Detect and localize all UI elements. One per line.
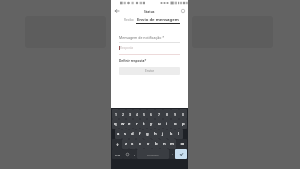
button[interactable]: 3	[126, 109, 133, 119]
button[interactable]: 0	[179, 109, 187, 119]
button[interactable]: f	[136, 129, 143, 139]
button[interactable]: Enviar	[119, 67, 180, 75]
staticText: 5	[143, 112, 145, 117]
button[interactable]: s	[122, 129, 129, 139]
button[interactable]: ,	[131, 149, 137, 159]
staticText: g	[146, 131, 149, 137]
button[interactable]: 5	[140, 109, 147, 119]
staticText: Envio de mensagem	[137, 17, 179, 23]
button[interactable]: k	[167, 129, 175, 139]
button[interactable]: Envio de mensagem	[136, 15, 180, 24]
button[interactable]: 2	[119, 109, 126, 119]
staticText: n	[163, 141, 166, 147]
button[interactable]: o	[171, 119, 179, 129]
button[interactable]: x	[129, 139, 136, 149]
staticText: o	[174, 121, 177, 127]
staticText: Mensagem de notificação *	[119, 35, 165, 40]
staticText: 3	[129, 112, 131, 117]
staticText: ,	[134, 152, 135, 156]
button[interactable]: n	[160, 139, 168, 149]
button[interactable]: y	[147, 119, 155, 129]
staticText: p	[182, 121, 185, 127]
staticText: u	[158, 121, 161, 127]
button[interactable]: j	[159, 129, 167, 139]
staticText: 4	[136, 112, 138, 117]
button[interactable]: a	[115, 129, 122, 139]
button[interactable]: Recibo	[121, 15, 136, 24]
staticText: 6	[150, 112, 152, 117]
staticText: e	[128, 121, 131, 127]
button[interactable]: b	[152, 139, 160, 149]
button[interactable]: Shift	[112, 139, 122, 149]
button[interactable]: i	[163, 119, 171, 129]
staticText: 8	[166, 112, 168, 117]
staticText: m	[170, 141, 174, 147]
staticText: 9	[174, 112, 176, 117]
staticText: a	[117, 131, 120, 137]
staticText: q	[114, 121, 117, 127]
staticText: t	[143, 121, 145, 127]
staticText: Definir resposta*	[119, 59, 147, 63]
staticText: v	[147, 141, 150, 147]
button[interactable]: h	[151, 129, 159, 139]
button[interactable]: r	[133, 119, 140, 129]
button[interactable]: e	[126, 119, 133, 129]
button[interactable]: q	[112, 119, 119, 129]
button[interactable]: z	[122, 139, 129, 149]
staticText: ?123	[115, 153, 121, 156]
staticText: r	[136, 121, 138, 127]
staticText: 0	[182, 112, 184, 117]
button[interactable]: Back	[112, 6, 121, 15]
staticText: l	[178, 131, 180, 137]
button[interactable]: Enter	[175, 149, 187, 159]
staticText: 2	[122, 112, 124, 117]
button[interactable]: t	[140, 119, 147, 129]
button[interactable]: v	[144, 139, 152, 149]
staticText: d	[131, 131, 134, 137]
staticText: Enviar	[145, 69, 155, 73]
button[interactable]: g	[143, 129, 151, 139]
button[interactable]: 9	[171, 109, 179, 119]
staticText: português	[147, 153, 159, 156]
button[interactable]: 8	[163, 109, 171, 119]
staticText: 1	[115, 112, 117, 117]
staticText: y	[150, 121, 153, 127]
staticText: j	[162, 131, 164, 137]
button[interactable]: d	[129, 129, 136, 139]
button[interactable]: c	[136, 139, 144, 149]
staticText: z	[125, 141, 127, 147]
button[interactable]: .	[169, 149, 175, 159]
staticText: Resposta	[120, 46, 134, 50]
staticText: b	[155, 141, 158, 147]
staticText: w	[121, 121, 125, 127]
staticText: .	[172, 152, 173, 156]
staticText: s	[124, 131, 127, 137]
staticText: 7	[158, 112, 160, 117]
button[interactable]: 7	[155, 109, 163, 119]
button[interactable]: u	[155, 119, 163, 129]
button[interactable]: w	[119, 119, 126, 129]
button[interactable]: p	[179, 119, 187, 129]
staticText: f	[139, 131, 141, 137]
staticText: k	[170, 131, 173, 137]
button[interactable]: português	[137, 149, 169, 159]
staticText: c	[139, 141, 142, 147]
staticText: i	[166, 121, 168, 127]
button[interactable]: ?123	[112, 149, 123, 159]
button[interactable]: 6	[147, 109, 155, 119]
button[interactable]: 1	[112, 109, 119, 119]
button[interactable]: l	[175, 129, 183, 139]
button[interactable]: Help	[178, 6, 187, 15]
button[interactable]: 4	[133, 109, 140, 119]
staticText: h	[154, 131, 157, 137]
button[interactable]: m	[168, 139, 176, 149]
button[interactable]: Emoji	[123, 149, 131, 159]
staticText: Status	[144, 9, 155, 13]
staticText: x	[131, 141, 134, 147]
staticText: Recibo	[124, 18, 134, 22]
button[interactable]: Backspace	[176, 139, 187, 149]
